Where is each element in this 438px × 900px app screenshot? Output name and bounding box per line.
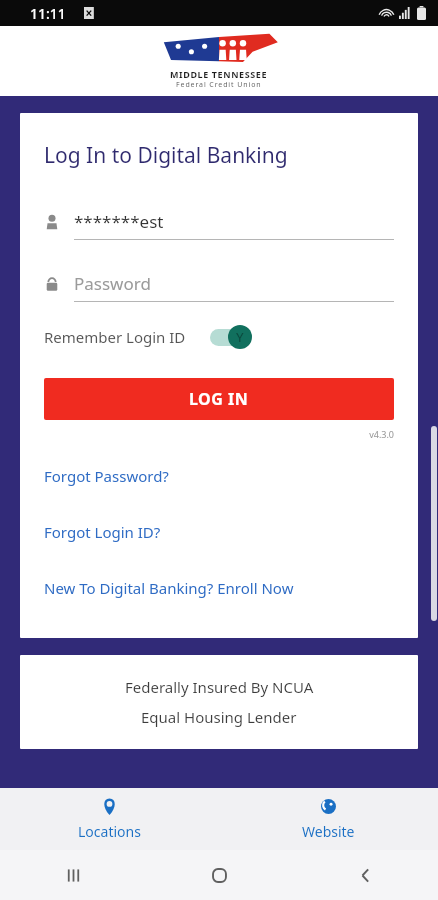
- staticText: Remember Login ID: [44, 327, 186, 347]
- button[interactable]: New To Digital Banking? Enroll Now: [44, 578, 394, 598]
- staticText: Password: [74, 272, 151, 295]
- staticText: 11:11: [30, 4, 66, 23]
- staticText: Federally Insured By NCUA: [125, 677, 314, 697]
- button[interactable]: Recents: [0, 850, 146, 900]
- button[interactable]: LOG IN: [44, 378, 394, 420]
- staticText: MIDDLE TENNESSEE: [170, 68, 268, 80]
- staticText: Forgot Password?: [44, 466, 169, 486]
- button[interactable]: Locations: [0, 788, 219, 850]
- button[interactable]: Back: [292, 850, 438, 900]
- staticText: Log In to Digital Banking: [44, 141, 288, 170]
- staticText: *******est: [74, 210, 164, 233]
- button[interactable]: Forgot Login ID?: [44, 522, 394, 542]
- button[interactable]: Forgot Password?: [44, 466, 394, 486]
- staticText: Equal Housing Lender: [141, 707, 297, 727]
- staticText: v4.3.0: [44, 428, 394, 440]
- button[interactable]: Home: [146, 850, 292, 900]
- button[interactable]: Y: [208, 324, 252, 350]
- staticText: Locations: [78, 822, 141, 841]
- staticText: New To Digital Banking? Enroll Now: [44, 578, 294, 598]
- staticText: Forgot Login ID?: [44, 522, 161, 542]
- button[interactable]: Website: [219, 788, 438, 850]
- staticText: Y: [236, 328, 244, 346]
- staticText: Website: [302, 822, 355, 841]
- staticText: Federal Credit Union: [176, 80, 262, 90]
- staticText: LOG IN: [189, 388, 249, 410]
